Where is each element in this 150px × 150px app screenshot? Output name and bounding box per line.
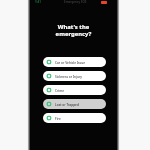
staticText: Emergency SOS [64,0,87,4]
button[interactable]: Fire [43,113,106,123]
button[interactable]: Crime [43,85,106,95]
button[interactable]: Sickness or Injury [43,71,106,81]
other: Battery [101,1,107,4]
staticText: What's the emergency? [30,23,117,38]
button[interactable]: Car or Vehicle Issue [43,57,106,67]
staticText: 9:41 [35,0,41,4]
staticText: Car or Vehicle Issue [55,61,86,65]
staticText: Crime [55,89,65,93]
staticText: Sickness or Injury [55,75,83,79]
staticText: Lost or Trapped [55,103,79,107]
button[interactable]: Lost or Trapped [43,99,106,109]
staticText: Fire [55,117,61,121]
